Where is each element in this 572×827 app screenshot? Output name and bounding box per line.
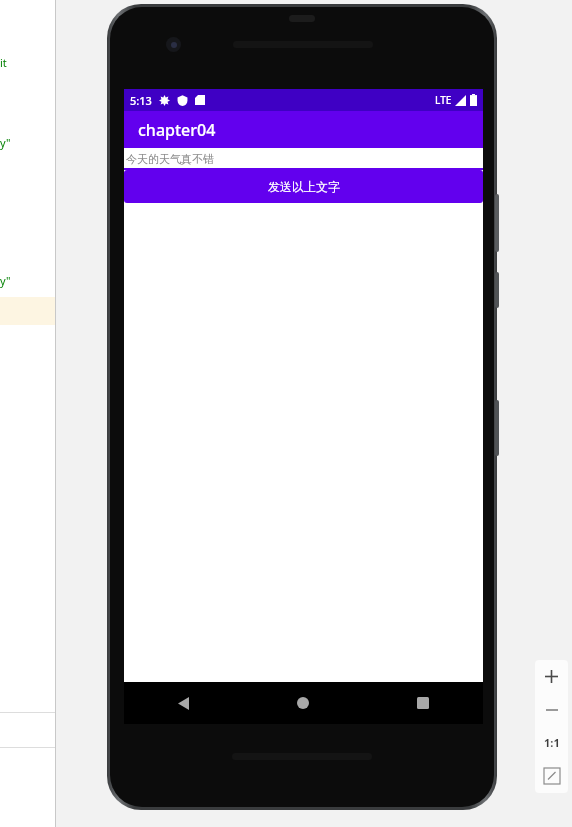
button[interactable]: Zoom in xyxy=(535,660,568,693)
button[interactable]: Recent apps xyxy=(363,682,483,724)
button[interactable]: Zoom to fit xyxy=(535,759,568,793)
staticText: 发送以上文字 xyxy=(268,179,340,194)
staticText: 5:13 xyxy=(130,93,152,108)
staticText: LTE xyxy=(435,93,452,107)
button[interactable]: chapter04 xyxy=(124,111,483,148)
button[interactable]: 发送以上文字 xyxy=(124,170,483,203)
staticText: y" xyxy=(0,135,11,150)
button[interactable]: Back xyxy=(124,682,243,724)
button[interactable]: Zoom to actual size xyxy=(535,726,568,759)
staticText: 1:1 xyxy=(544,735,560,750)
button[interactable]: Zoom out xyxy=(535,693,568,726)
button[interactable]: 今天的天气真不错 xyxy=(124,148,483,170)
staticText: chapter04 xyxy=(138,119,216,141)
staticText: y" xyxy=(0,273,11,288)
button[interactable]: Home xyxy=(243,682,363,724)
staticText: it xyxy=(0,55,7,70)
staticText: 今天的天气真不错 xyxy=(126,152,214,166)
